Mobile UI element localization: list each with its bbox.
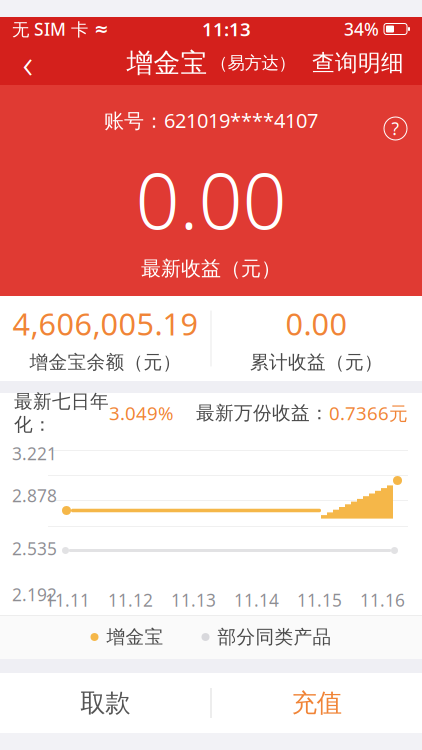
staticText: 3.221 [12, 442, 57, 465]
button[interactable]: 充值 [211, 673, 422, 733]
staticText: 0.00 [135, 148, 286, 250]
staticText: 11.11 [45, 588, 90, 611]
staticText: 增金宝余额（元） [29, 351, 181, 374]
staticText: 3.049% [109, 401, 174, 425]
staticText: 最新收益（元） [141, 256, 281, 281]
staticText: 11.12 [108, 588, 153, 611]
staticText: 11.16 [360, 588, 405, 611]
staticText: 11.14 [234, 588, 279, 611]
staticText: 查询明细 [312, 49, 404, 77]
staticText: ≈ [94, 19, 109, 39]
staticText: 充值 [292, 687, 342, 718]
button[interactable]: 查询明细 [300, 41, 416, 85]
button[interactable]: 取款 [0, 673, 210, 733]
staticText: 0.00 [285, 303, 347, 344]
staticText: 2.878 [12, 484, 57, 507]
staticText: 4,606,005.19 [12, 303, 198, 344]
staticText: ? [391, 117, 399, 140]
staticText: 部分同类产品 [217, 625, 331, 648]
staticText: 34% [344, 17, 379, 40]
staticText: 11.15 [297, 588, 342, 611]
staticText: ‹ [22, 36, 33, 89]
staticText: 最新万份收益： [196, 401, 329, 424]
staticText: 2.535 [12, 537, 57, 560]
button[interactable]: 返回 [6, 41, 50, 85]
staticText: 0.7366元 [329, 401, 408, 425]
staticText: 取款 [80, 687, 130, 718]
staticText: 无 SIM 卡 [12, 17, 88, 40]
staticText: 增金宝 [126, 47, 207, 79]
staticText: 最新七日年化： [14, 390, 109, 436]
staticText: （易方达） [210, 52, 295, 74]
button[interactable]: 帮助 [384, 117, 407, 140]
staticText: 账号：621019****4107 [104, 107, 318, 134]
staticText: 累计收益（元） [250, 351, 383, 374]
staticText: 增金宝 [106, 625, 163, 648]
staticText: 11:13 [202, 17, 251, 41]
staticText: 2.192 [12, 583, 57, 606]
staticText: 11.13 [171, 588, 216, 611]
